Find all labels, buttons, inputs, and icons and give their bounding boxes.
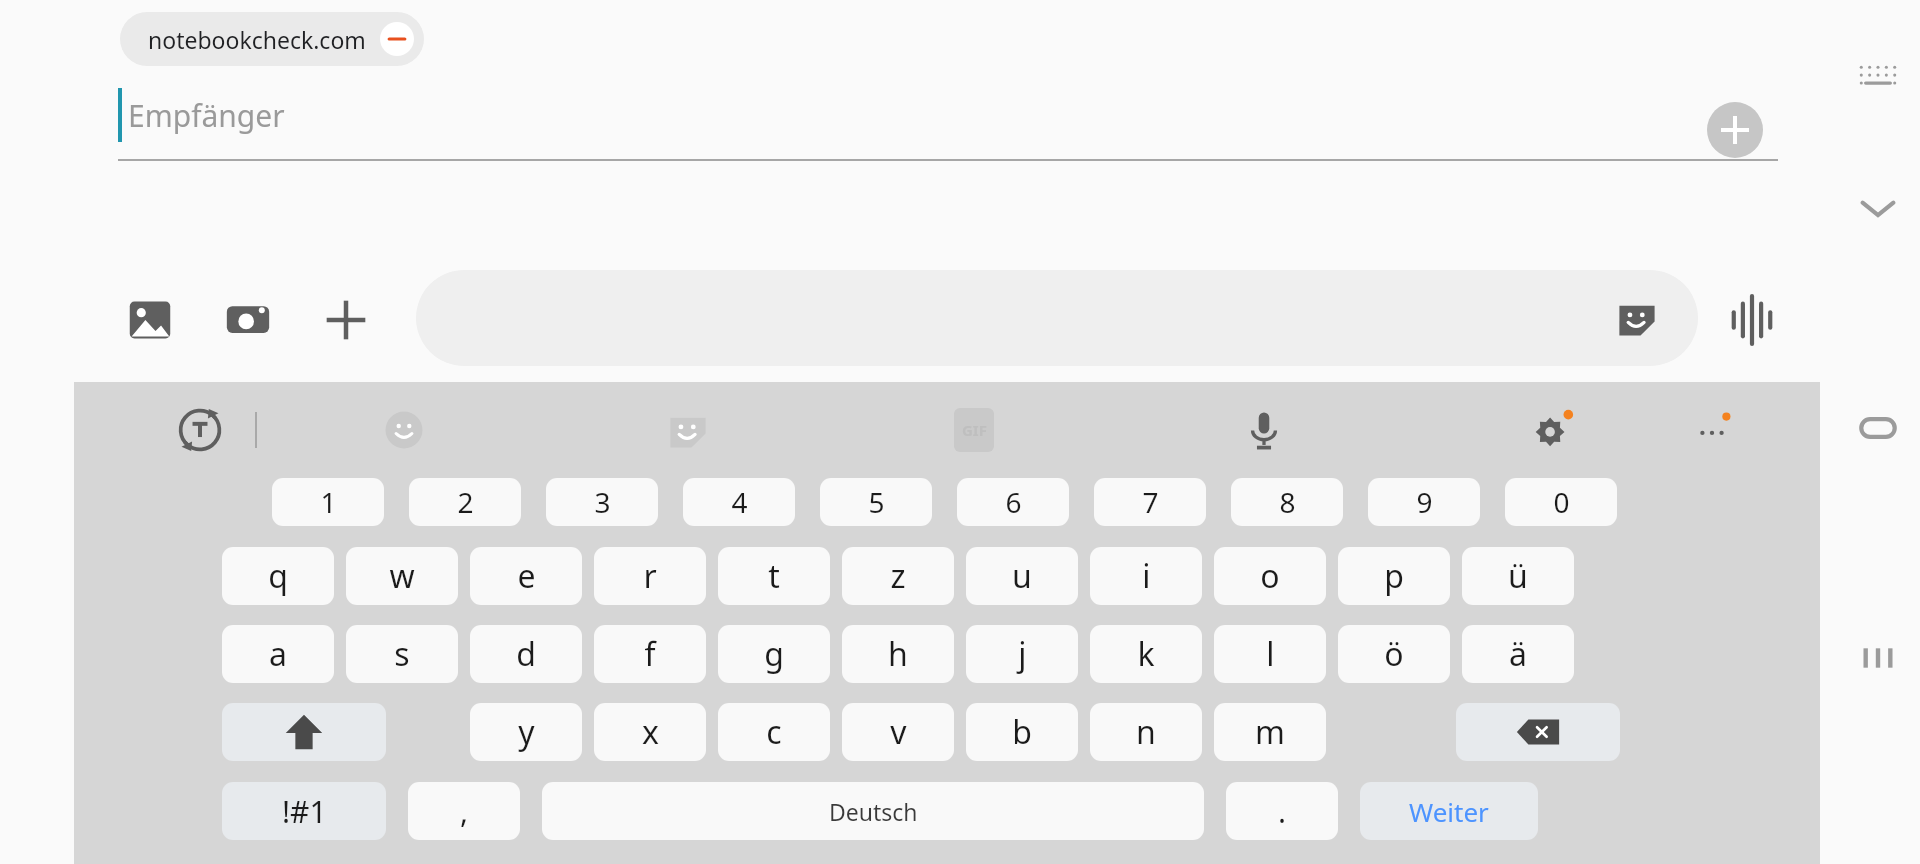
button[interactable]: Keyboard settings	[1522, 400, 1582, 460]
staticText: i	[1142, 554, 1151, 598]
staticText: notebookcheck.com	[148, 24, 366, 55]
staticText: s	[394, 632, 410, 676]
button[interactable]: b	[966, 703, 1078, 761]
staticText: t	[768, 554, 780, 598]
staticText: x	[642, 710, 659, 754]
button[interactable]: w	[346, 547, 458, 605]
staticText: ö	[1384, 632, 1404, 676]
button[interactable]: h	[842, 625, 954, 683]
staticText: a	[269, 632, 287, 676]
button[interactable]: 3	[546, 478, 658, 526]
button[interactable]: l	[1214, 625, 1326, 683]
button[interactable]: z	[842, 547, 954, 605]
staticText: c	[766, 710, 782, 754]
button[interactable]: Shift	[222, 703, 386, 761]
button[interactable]: Sticker	[658, 400, 718, 460]
button[interactable]: Hide keyboard	[1850, 48, 1906, 104]
staticText: 3	[594, 483, 611, 521]
staticText: b	[1012, 710, 1032, 754]
button[interactable]: y	[470, 703, 582, 761]
button[interactable]: Add recipient	[1707, 102, 1763, 158]
button[interactable]: Collapse	[1850, 180, 1906, 236]
button[interactable]: v	[842, 703, 954, 761]
button[interactable]: 1	[272, 478, 384, 526]
button[interactable]: x	[594, 703, 706, 761]
button[interactable]: r	[594, 547, 706, 605]
button[interactable]: 9	[1368, 478, 1480, 526]
button[interactable]: a	[222, 625, 334, 683]
button[interactable]: More options	[1682, 400, 1742, 460]
button[interactable]: Gallery	[122, 292, 178, 348]
staticText: ü	[1508, 554, 1528, 598]
button[interactable]: Emoji	[374, 400, 434, 460]
staticText: z	[890, 554, 906, 598]
button[interactable]: t	[718, 547, 830, 605]
button[interactable]: j	[966, 625, 1078, 683]
button[interactable]: g	[718, 625, 830, 683]
button[interactable]: k	[1090, 625, 1202, 683]
button[interactable]: Voice message	[1724, 292, 1780, 348]
button[interactable]: n	[1090, 703, 1202, 761]
button[interactable]: Deutsch	[542, 782, 1204, 840]
staticText: l	[1266, 632, 1275, 676]
button[interactable]: ü	[1462, 547, 1574, 605]
staticText: g	[764, 632, 784, 676]
button[interactable]: Weiter	[1360, 782, 1538, 840]
button[interactable]: Translate	[170, 400, 230, 460]
staticText: 8	[1279, 483, 1296, 521]
button[interactable]: p	[1338, 547, 1450, 605]
button[interactable]: 7	[1094, 478, 1206, 526]
button[interactable]: 8	[1231, 478, 1343, 526]
button[interactable]: Remove recipient	[380, 22, 414, 56]
staticText: k	[1137, 632, 1155, 676]
staticText: d	[516, 632, 536, 676]
button[interactable]: !#1	[222, 782, 386, 840]
button[interactable]: 2	[409, 478, 521, 526]
button[interactable]: d	[470, 625, 582, 683]
staticText: 1	[320, 483, 337, 521]
button[interactable]: Camera	[220, 292, 276, 348]
staticText: 9	[1416, 483, 1433, 521]
button[interactable]: m	[1214, 703, 1326, 761]
button[interactable]: s	[346, 625, 458, 683]
button[interactable]: 4	[683, 478, 795, 526]
button[interactable]: More attachments	[318, 292, 374, 348]
button[interactable]: Backspace	[1456, 703, 1620, 761]
staticText: 6	[1005, 483, 1022, 521]
staticText: 2	[457, 483, 474, 521]
staticText: j	[1018, 632, 1027, 676]
button[interactable]: ä	[1462, 625, 1574, 683]
button[interactable]: o	[1214, 547, 1326, 605]
button[interactable]: u	[966, 547, 1078, 605]
staticText: 5	[868, 483, 885, 521]
button[interactable]: Stickers	[416, 270, 1698, 366]
button[interactable]: notebookcheck.com	[120, 12, 424, 66]
button[interactable]: f	[594, 625, 706, 683]
staticText: GIF	[962, 420, 987, 440]
staticText: w	[389, 554, 415, 598]
button[interactable]: Stickers	[1610, 291, 1664, 345]
button[interactable]: q	[222, 547, 334, 605]
staticText: 4	[731, 483, 748, 521]
button[interactable]: ,	[408, 782, 520, 840]
staticText: 0	[1553, 483, 1570, 521]
button[interactable]: Home	[1850, 400, 1906, 456]
staticText: f	[644, 632, 656, 676]
staticText: r	[643, 554, 657, 598]
button[interactable]: 6	[957, 478, 1069, 526]
button[interactable]: GIF	[944, 400, 1004, 460]
button[interactable]: e	[470, 547, 582, 605]
staticText: o	[1260, 554, 1280, 598]
button[interactable]: .	[1226, 782, 1338, 840]
button[interactable]: 0	[1505, 478, 1617, 526]
staticText: u	[1012, 554, 1032, 598]
staticText: q	[268, 554, 288, 598]
button[interactable]: Voice typing	[1234, 400, 1294, 460]
button[interactable]: i	[1090, 547, 1202, 605]
button[interactable]: ö	[1338, 625, 1450, 683]
button[interactable]: 5	[820, 478, 932, 526]
button[interactable]: Recent apps	[1850, 630, 1906, 686]
staticText: !#1	[282, 791, 327, 832]
button[interactable]: c	[718, 703, 830, 761]
staticText: e	[517, 554, 536, 598]
